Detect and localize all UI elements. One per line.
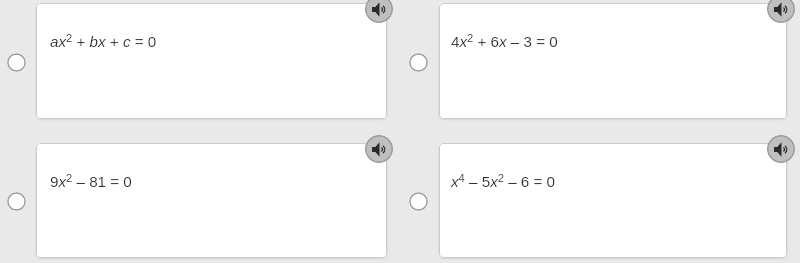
button[interactable]: Play audio xyxy=(767,0,795,23)
button[interactable]: Play audio xyxy=(365,135,393,163)
button[interactable]: Select answer xyxy=(409,192,428,211)
button[interactable]: ax2 + bx + c = 0 xyxy=(36,3,387,119)
staticText: 9x2 – 81 = 0 xyxy=(50,172,132,190)
button[interactable]: Select answer xyxy=(7,192,26,211)
button[interactable]: x4 – 5x2 – 6 = 0 xyxy=(439,143,787,258)
staticText: ax2 + bx + c = 0 xyxy=(50,32,157,50)
staticText: 4x2 + 6x – 3 = 0 xyxy=(451,32,558,50)
button[interactable]: 9x2 – 81 = 0 xyxy=(36,143,387,258)
staticText: x4 – 5x2 – 6 = 0 xyxy=(451,172,556,190)
button[interactable]: 4x2 + 6x – 3 = 0 xyxy=(439,3,787,119)
button[interactable]: Play audio xyxy=(767,135,795,163)
button[interactable]: Select answer xyxy=(409,53,428,72)
button[interactable]: Play audio xyxy=(365,0,393,23)
button[interactable]: Select answer xyxy=(7,53,26,72)
